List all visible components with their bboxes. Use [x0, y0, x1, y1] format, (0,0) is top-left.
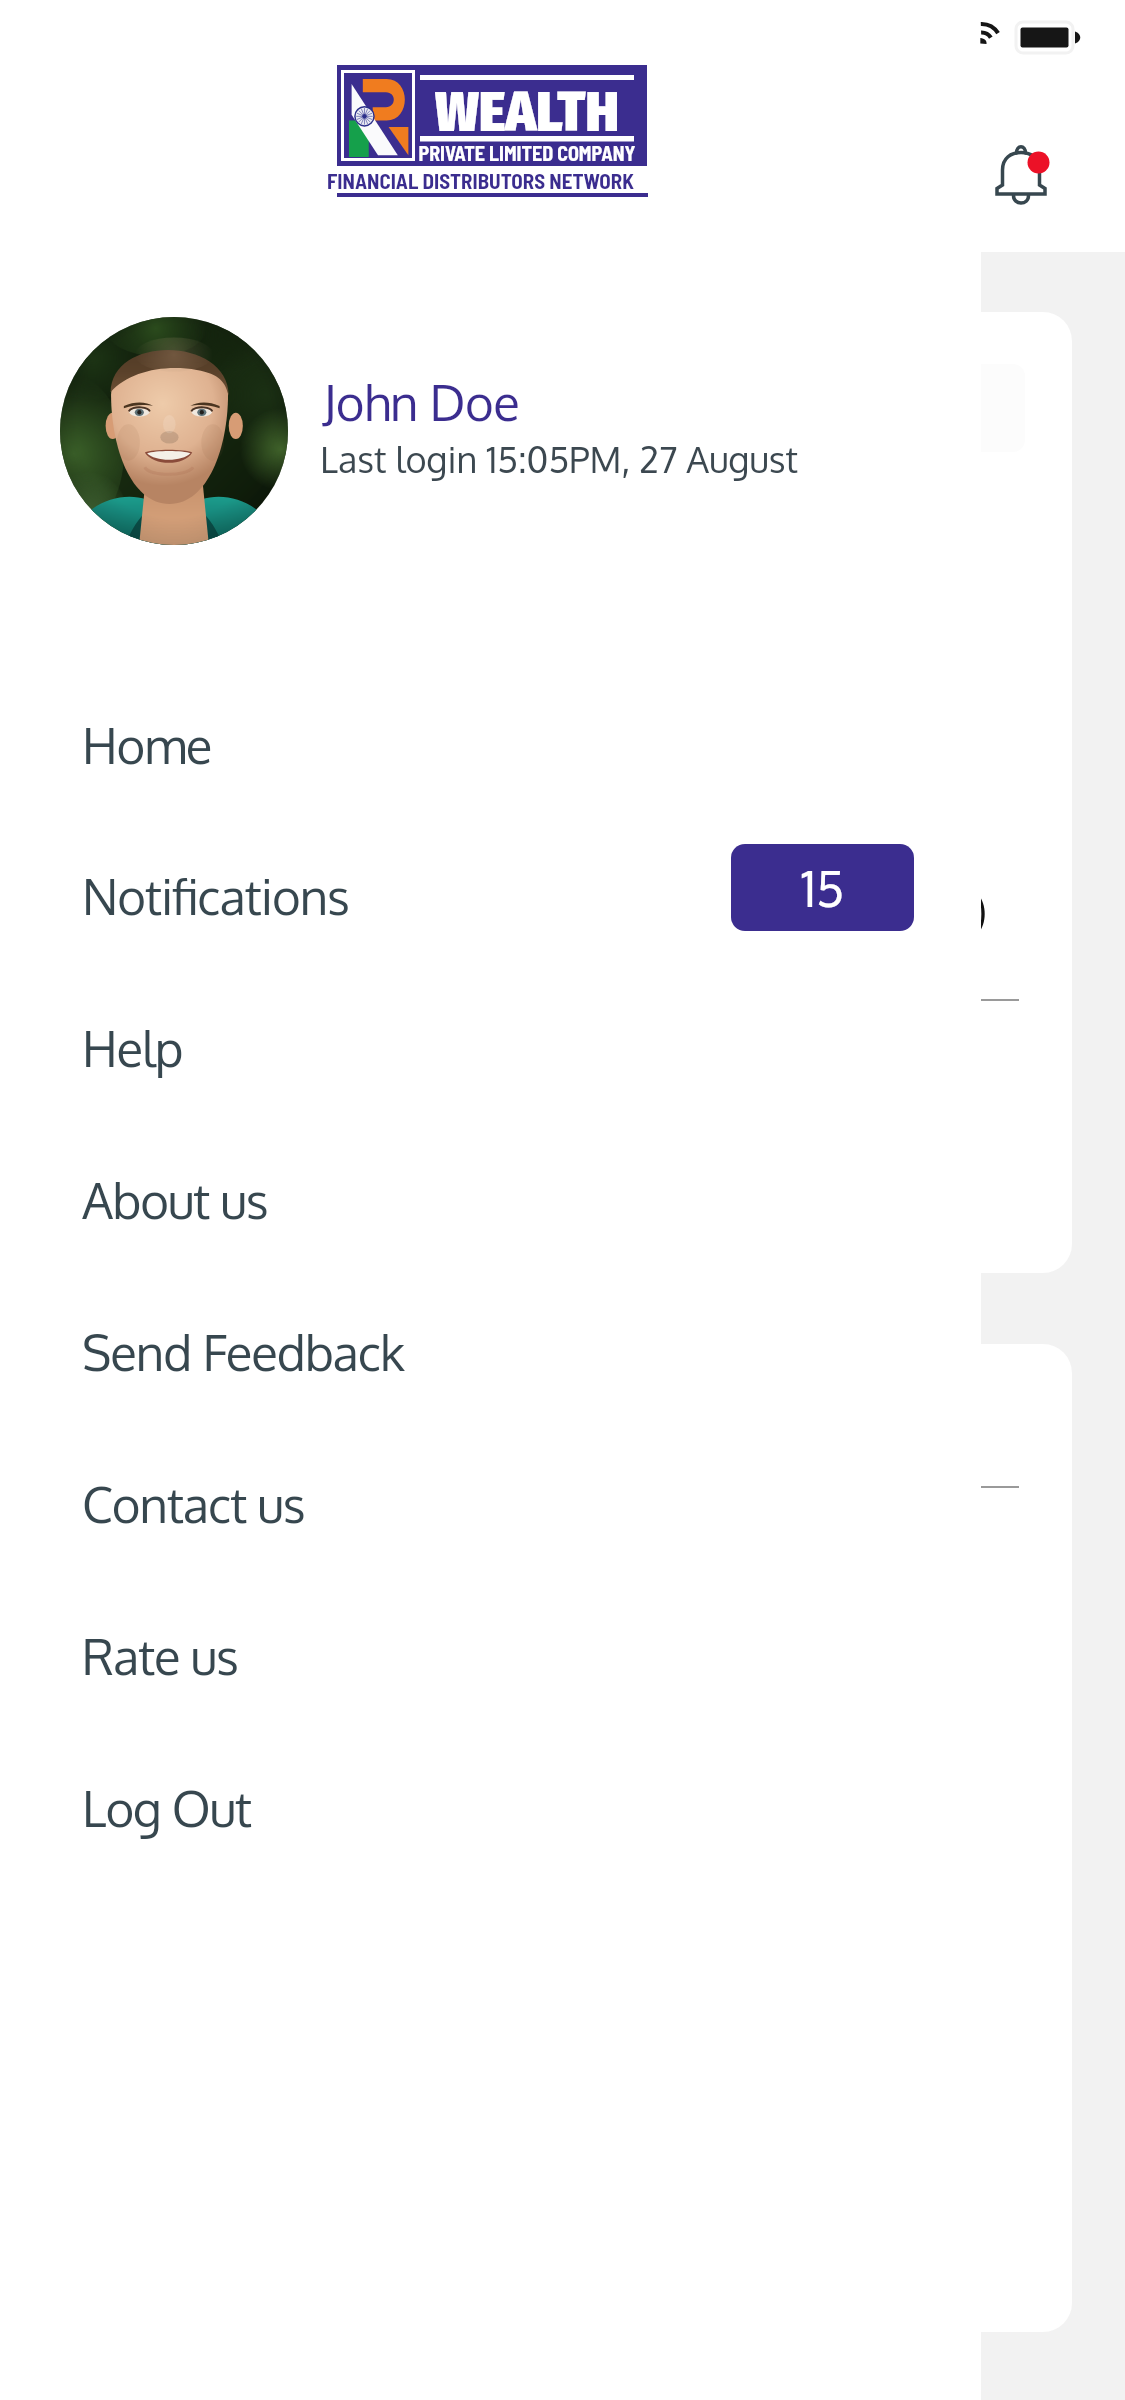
staticText: Contact us [82, 1473, 305, 1535]
staticText: About us [82, 1169, 268, 1231]
button[interactable]: John Doe [44, 300, 844, 562]
staticText: PRIVATE LIMITED COMPANY [397, 141, 657, 165]
staticText: Notifications [82, 865, 349, 927]
staticText: WEALTH [397, 79, 657, 146]
staticText: FINANCIAL DISTRIBUTORS NETWORK [325, 168, 636, 193]
staticText: Last login 15:05PM, 27 August [320, 436, 799, 481]
staticText: Rate us [82, 1625, 238, 1687]
button[interactable]: Contact us [0, 1428, 981, 1580]
staticText: John Doe [323, 371, 520, 433]
button[interactable]: Help [0, 972, 981, 1124]
button[interactable]: Home [0, 669, 981, 821]
button[interactable]: Send Feedback [0, 1276, 981, 1428]
button[interactable]: About us [0, 1124, 981, 1276]
staticText: Help [82, 1017, 183, 1079]
staticText: Send Feedback [82, 1321, 404, 1383]
button[interactable]: Notifications [0, 820, 981, 972]
staticText: Log Out [82, 1777, 251, 1839]
button[interactable]: Rate us [0, 1580, 981, 1732]
button[interactable]: Notifications [966, 118, 1082, 234]
staticText: 15 [801, 857, 845, 919]
button[interactable]: Log Out [0, 1732, 981, 1884]
staticText: Home [82, 714, 212, 776]
